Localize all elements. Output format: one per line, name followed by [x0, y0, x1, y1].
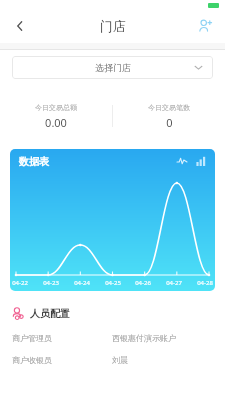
staticText: 0.00	[45, 115, 67, 130]
button[interactable]: Back	[0, 11, 40, 40]
staticText: 今日交易总额	[35, 103, 77, 112]
staticText: 选择门店	[95, 62, 131, 73]
staticText: 人员配置	[30, 307, 70, 320]
button[interactable]: 选择门店	[12, 56, 213, 79]
staticText: 门店	[100, 18, 126, 34]
staticText: 刘晨	[112, 355, 128, 365]
staticText: 04-24	[74, 279, 90, 287]
button[interactable]: Bar chart	[195, 155, 207, 167]
staticText: 04-25	[105, 279, 121, 287]
staticText: 数据表	[19, 155, 49, 168]
staticText: 商户收银员	[12, 355, 52, 365]
button[interactable]: Add member	[185, 11, 225, 40]
staticText: 04-22	[12, 279, 28, 287]
button[interactable]: 商户管理员	[12, 331, 213, 344]
staticText: 今日交易笔数	[148, 103, 190, 112]
staticText: 西银惠付演示账户	[112, 333, 176, 343]
staticText: 04-28	[197, 279, 213, 287]
staticText: 04-26	[135, 279, 151, 287]
staticText: 04-27	[166, 279, 182, 287]
staticText: 0	[166, 115, 173, 130]
button[interactable]: Line chart	[176, 155, 188, 167]
staticText: 04-23	[43, 279, 59, 287]
staticText: 商户管理员	[12, 333, 52, 343]
button[interactable]: 商户收银员	[12, 353, 213, 366]
